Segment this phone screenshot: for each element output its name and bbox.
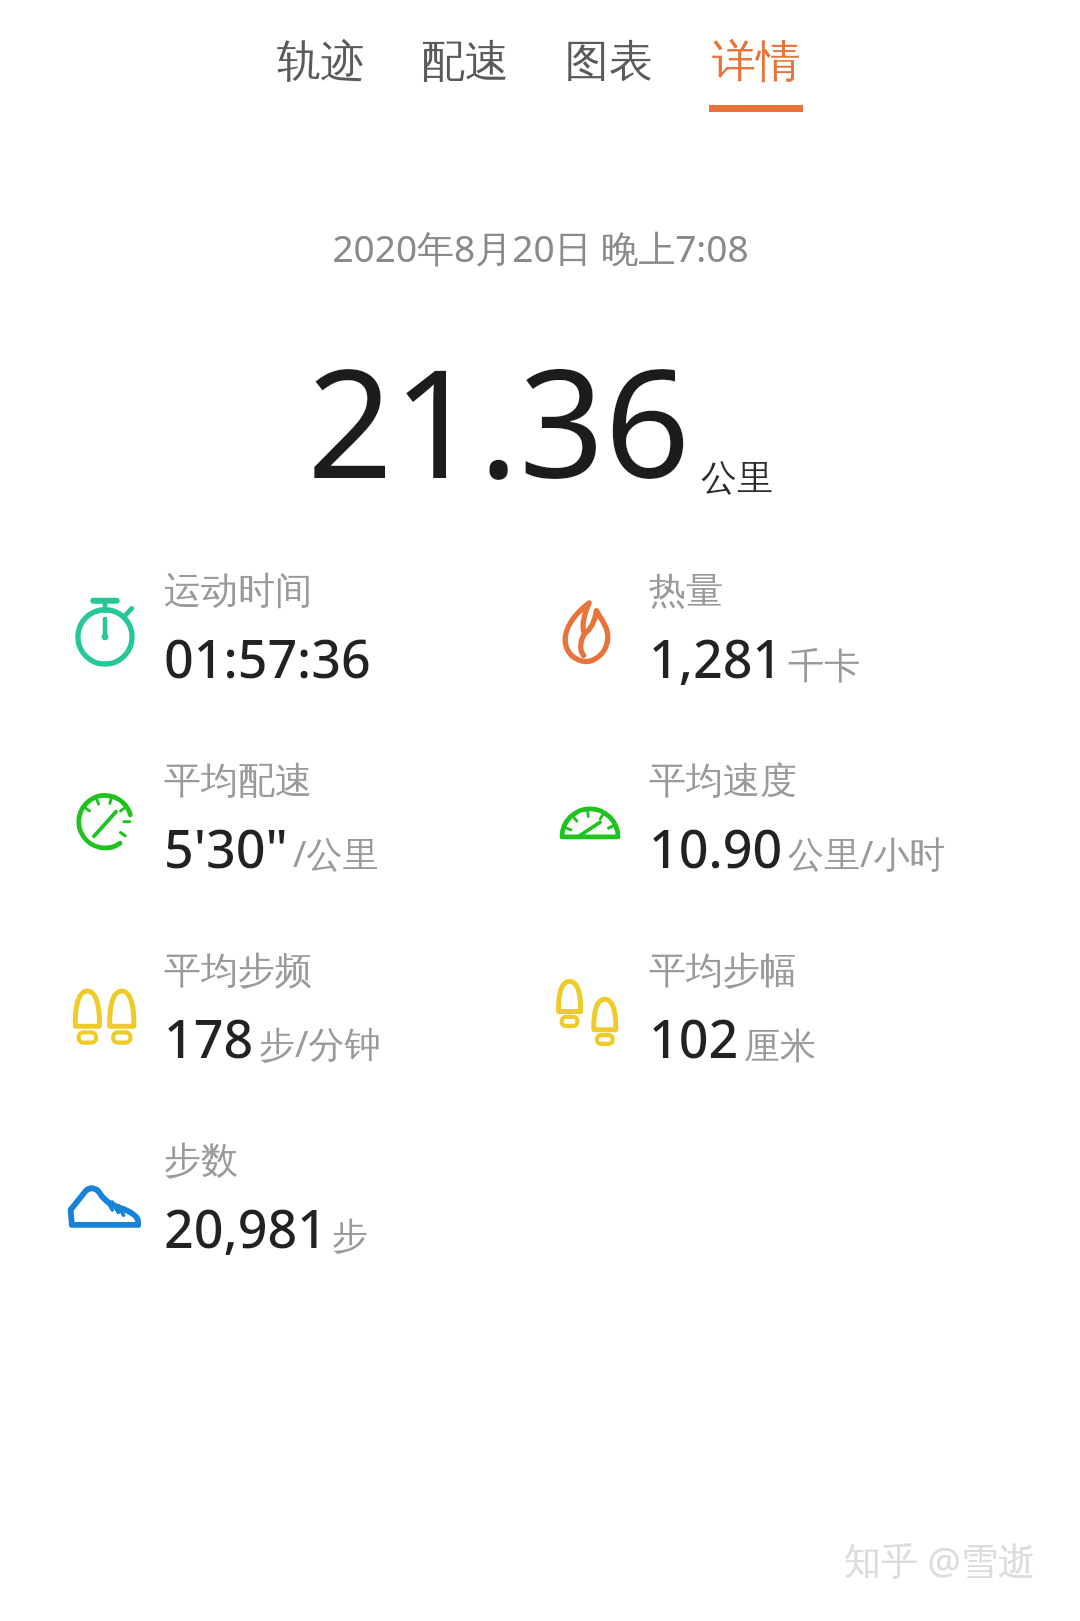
staticText: 步数: [164, 1137, 238, 1184]
staticText: 知乎 @雪逝: [844, 1534, 1035, 1585]
button[interactable]: 图表: [559, 30, 659, 109]
staticText: 01:57:36: [164, 622, 371, 693]
button[interactable]: Average pace: [62, 755, 379, 885]
staticText: 5'30": [164, 812, 288, 883]
staticText: 详情: [712, 34, 800, 89]
button[interactable]: Average cadence: [62, 945, 381, 1075]
staticText: 公里: [701, 455, 773, 500]
staticText: 千卡: [788, 643, 860, 688]
staticText: 图表: [565, 34, 653, 89]
staticText: 1,281: [649, 622, 783, 693]
staticText: 平均步频: [164, 947, 312, 994]
button[interactable]: Average stride: [547, 945, 816, 1075]
staticText: 步: [332, 1213, 368, 1258]
staticText: 平均步幅: [649, 947, 797, 994]
staticText: 步/分钟: [259, 1019, 381, 1068]
button[interactable]: 配速: [415, 30, 515, 109]
other: Duration: [62, 587, 148, 673]
staticText: 10.90: [649, 812, 783, 883]
staticText: 公里/小时: [788, 829, 946, 878]
other: Average cadence: [62, 967, 148, 1053]
staticText: 21.36: [307, 318, 691, 522]
staticText: 热量: [649, 567, 723, 614]
button[interactable]: 详情: [703, 30, 809, 116]
staticText: 厘米: [744, 1023, 816, 1068]
button[interactable]: Duration: [62, 565, 371, 695]
staticText: 178: [164, 1002, 254, 1073]
other: Average stride: [547, 967, 633, 1053]
staticText: 102: [649, 1002, 739, 1073]
button[interactable]: Calories: [547, 565, 860, 695]
button[interactable]: Average speed: [547, 755, 946, 885]
button[interactable]: 轨迹: [271, 30, 371, 109]
staticText: 平均速度: [649, 757, 797, 804]
staticText: 平均配速: [164, 757, 312, 804]
staticText: 2020年8月20日 晚上7:08: [332, 222, 749, 273]
other: Average pace: [62, 777, 148, 863]
other: Steps: [62, 1157, 148, 1243]
staticText: /公里: [293, 829, 379, 878]
button[interactable]: Steps: [62, 1135, 368, 1265]
staticText: 运动时间: [164, 567, 312, 614]
staticText: 20,981: [164, 1192, 327, 1263]
other: Calories: [547, 587, 633, 673]
other: Average speed: [547, 777, 633, 863]
staticText: 配速: [421, 34, 509, 89]
staticText: 轨迹: [277, 34, 365, 89]
